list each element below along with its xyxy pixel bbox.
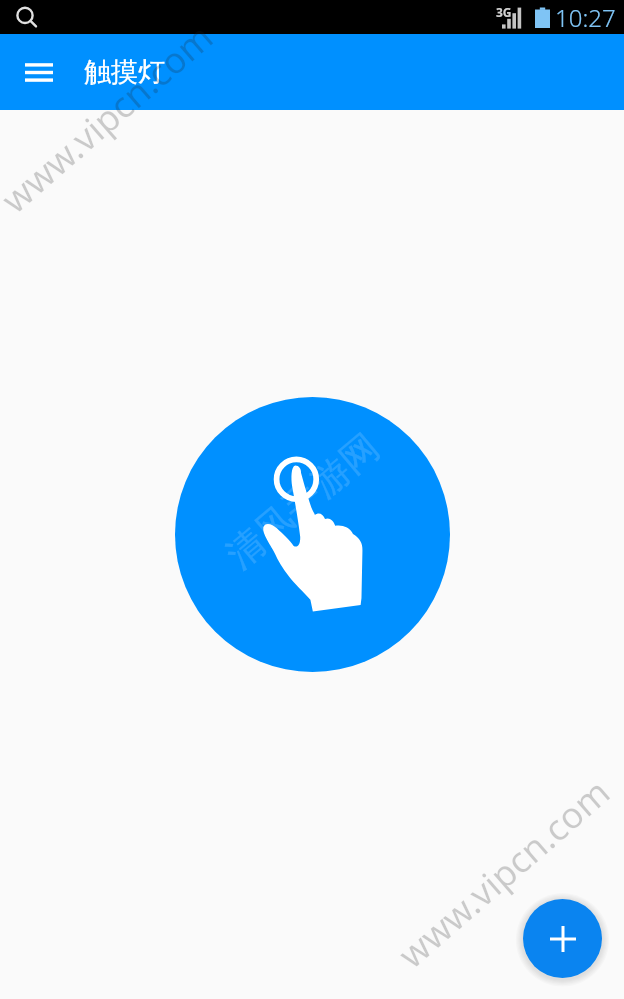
staticText: 触摸灯 [84,55,165,89]
staticText: 清风手游网 [217,424,389,578]
staticText: 10:27 [555,1,616,34]
button[interactable]: Search [10,2,40,32]
staticText: www.vipcn.com [388,768,620,978]
button[interactable]: Add [523,899,602,978]
staticText: www.vipcn.com [0,13,223,223]
button[interactable]: Touch light [175,397,450,672]
staticText: 3G [496,4,512,20]
button[interactable]: Menu [14,47,64,97]
